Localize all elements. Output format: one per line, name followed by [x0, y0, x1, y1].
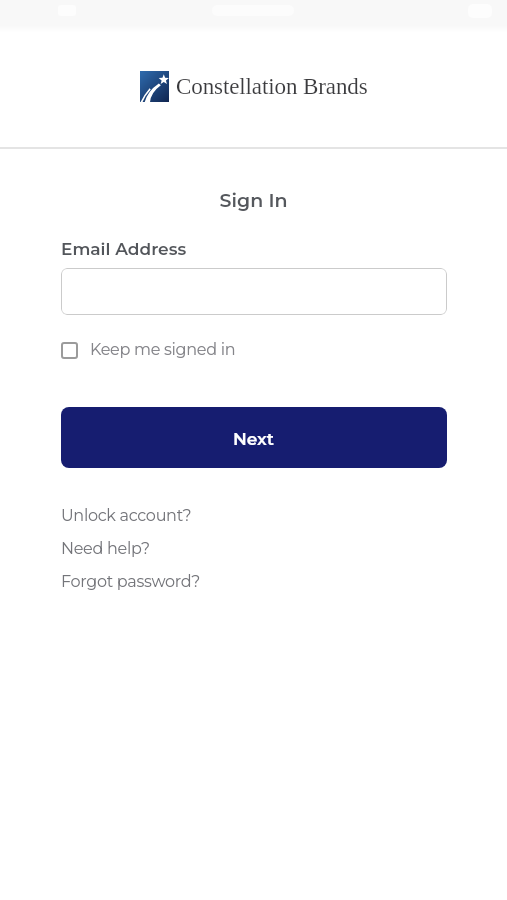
button[interactable] — [61, 268, 447, 315]
staticText: Email Address — [61, 239, 187, 260]
staticText: Unlock account? — [61, 506, 192, 526]
button[interactable]: Keep me signed in — [61, 339, 236, 361]
staticText: Sign In — [0, 189, 507, 212]
staticText: Forgot password? — [61, 572, 201, 592]
button[interactable]: Need help? — [61, 539, 150, 559]
staticText: Constellation Brands — [176, 74, 368, 99]
button[interactable]: Forgot password? — [61, 572, 201, 592]
staticText: Keep me signed in — [90, 340, 236, 360]
button[interactable]: Next — [61, 407, 447, 468]
button[interactable]: Unlock account? — [61, 506, 192, 526]
staticText: Next — [233, 429, 275, 450]
staticText: Need help? — [61, 539, 150, 559]
